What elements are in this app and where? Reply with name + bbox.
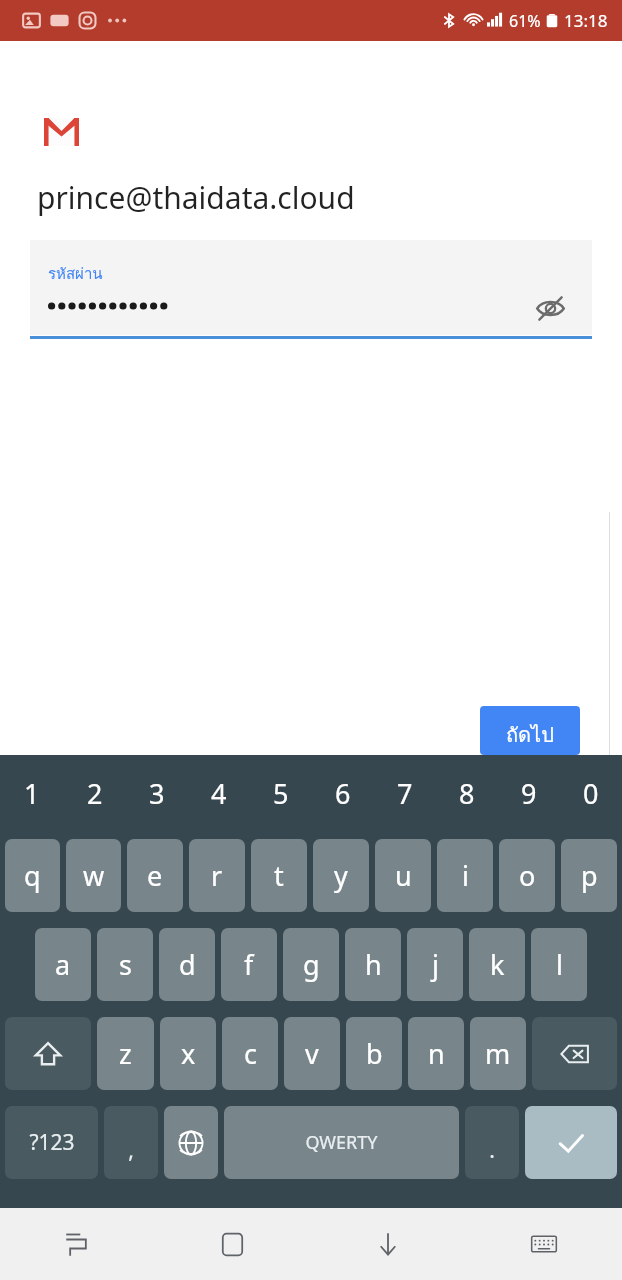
button[interactable]: Backspace bbox=[532, 1017, 617, 1090]
staticText: 7 bbox=[397, 775, 413, 812]
button[interactable]: Home bbox=[155, 1208, 310, 1280]
button[interactable]: 8 bbox=[436, 755, 498, 831]
button[interactable]: e bbox=[127, 839, 183, 912]
staticText: p bbox=[581, 857, 598, 894]
button[interactable]: t bbox=[251, 839, 307, 912]
button[interactable]: , bbox=[104, 1106, 158, 1179]
staticText: 13:18 bbox=[564, 9, 608, 32]
button[interactable]: n bbox=[408, 1017, 464, 1090]
staticText: k bbox=[490, 946, 505, 983]
button[interactable]: g bbox=[283, 928, 339, 1001]
button[interactable]: Show password bbox=[530, 288, 570, 328]
staticText: prince@thaidata.cloud bbox=[37, 177, 355, 218]
staticText: s bbox=[119, 946, 132, 983]
button[interactable]: Change language bbox=[164, 1106, 218, 1179]
button[interactable]: l bbox=[531, 928, 587, 1001]
staticText: e bbox=[147, 857, 163, 894]
button[interactable]: รหัสผ่าน bbox=[30, 240, 592, 339]
button[interactable]: x bbox=[160, 1017, 216, 1090]
button[interactable]: ถัดไป bbox=[480, 706, 580, 755]
staticText: รหัสผ่าน bbox=[48, 262, 103, 286]
button[interactable]: f bbox=[221, 928, 277, 1001]
staticText: m bbox=[485, 1035, 511, 1072]
button[interactable]: Enter bbox=[525, 1106, 617, 1179]
button[interactable]: 1 bbox=[0, 755, 63, 831]
staticText: 8 bbox=[459, 775, 475, 812]
button[interactable]: a bbox=[35, 928, 91, 1001]
staticText: , bbox=[128, 1136, 134, 1165]
button[interactable]: Shift bbox=[5, 1017, 91, 1090]
button[interactable]: b bbox=[346, 1017, 402, 1090]
staticText: r bbox=[211, 857, 223, 894]
staticText: z bbox=[119, 1035, 132, 1072]
staticText: 4 bbox=[211, 775, 227, 812]
button[interactable]: q bbox=[5, 839, 60, 912]
staticText: 3 bbox=[149, 775, 165, 812]
button[interactable]: o bbox=[499, 839, 555, 912]
staticText: 0 bbox=[583, 775, 599, 812]
staticText: a bbox=[55, 946, 71, 983]
staticText: l bbox=[556, 946, 563, 983]
button[interactable]: v bbox=[284, 1017, 340, 1090]
staticText: 61% bbox=[509, 10, 541, 32]
staticText: u bbox=[395, 857, 412, 894]
button[interactable]: 7 bbox=[374, 755, 436, 831]
staticText: n bbox=[428, 1035, 445, 1072]
button[interactable]: c bbox=[222, 1017, 278, 1090]
button[interactable]: Hide keyboard bbox=[310, 1208, 466, 1280]
staticText: 1 bbox=[24, 775, 40, 812]
button[interactable]: h bbox=[345, 928, 401, 1001]
button[interactable]: r bbox=[189, 839, 245, 912]
button[interactable]: 3 bbox=[126, 755, 188, 831]
button[interactable]: m bbox=[470, 1017, 526, 1090]
staticText: ถัดไป bbox=[506, 719, 554, 742]
staticText: ?123 bbox=[29, 1128, 75, 1157]
button[interactable]: 0 bbox=[560, 755, 622, 831]
staticText: . bbox=[489, 1136, 495, 1165]
button[interactable]: z bbox=[97, 1017, 154, 1090]
button[interactable]: Recents bbox=[0, 1208, 155, 1280]
button[interactable]: Switch keyboard bbox=[466, 1208, 622, 1280]
staticText: i bbox=[462, 857, 469, 894]
staticText: QWERTY bbox=[305, 1130, 378, 1155]
staticText: 9 bbox=[521, 775, 537, 812]
staticText: c bbox=[244, 1035, 257, 1072]
button[interactable]: p bbox=[561, 839, 617, 912]
button[interactable]: y bbox=[313, 839, 369, 912]
staticText: w bbox=[83, 857, 105, 894]
button[interactable]: j bbox=[407, 928, 463, 1001]
staticText: h bbox=[365, 946, 382, 983]
button[interactable]: ?123 bbox=[5, 1106, 98, 1179]
staticText: q bbox=[24, 857, 41, 894]
button[interactable]: 6 bbox=[312, 755, 374, 831]
staticText: v bbox=[305, 1035, 319, 1072]
button[interactable]: w bbox=[66, 839, 121, 912]
staticText: j bbox=[432, 946, 439, 983]
staticText: 2 bbox=[87, 775, 103, 812]
button[interactable]: . bbox=[465, 1106, 519, 1179]
button[interactable]: 5 bbox=[250, 755, 312, 831]
button[interactable]: 2 bbox=[63, 755, 126, 831]
button[interactable]: d bbox=[159, 928, 215, 1001]
staticText: y bbox=[334, 857, 348, 894]
staticText: 5 bbox=[273, 775, 289, 812]
staticText: b bbox=[366, 1035, 383, 1072]
button[interactable]: QWERTY bbox=[224, 1106, 459, 1179]
staticText: x bbox=[181, 1035, 196, 1072]
button[interactable]: 4 bbox=[188, 755, 250, 831]
staticText: o bbox=[519, 857, 536, 894]
staticText: g bbox=[303, 946, 320, 983]
button[interactable]: 9 bbox=[498, 755, 560, 831]
button[interactable]: u bbox=[375, 839, 431, 912]
staticText: t bbox=[274, 857, 284, 894]
button[interactable]: s bbox=[97, 928, 153, 1001]
staticText: d bbox=[179, 946, 196, 983]
staticText: 6 bbox=[335, 775, 351, 812]
staticText: f bbox=[244, 946, 254, 983]
button[interactable]: k bbox=[469, 928, 525, 1001]
button[interactable]: i bbox=[437, 839, 493, 912]
